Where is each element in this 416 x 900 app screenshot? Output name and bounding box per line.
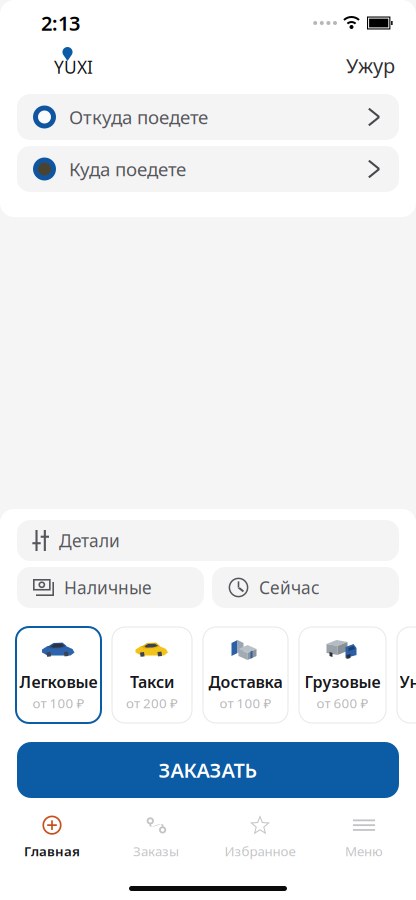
staticText: Меню	[345, 842, 383, 860]
button[interactable]: Куда поедете	[17, 146, 399, 192]
staticText: YUXI	[54, 55, 93, 78]
button[interactable]: Наличные	[17, 567, 204, 608]
staticText: Куда поедете	[69, 157, 186, 181]
staticText: Откуда поедете	[69, 105, 208, 129]
button[interactable]: Главная	[0, 815, 104, 859]
button[interactable]: Такси	[112, 627, 192, 723]
staticText: Детали	[59, 529, 120, 552]
staticText: от 200 ₽	[126, 694, 178, 712]
button[interactable]: Доставка	[203, 627, 288, 723]
staticText: Такси	[130, 671, 174, 692]
staticText: Наличные	[64, 576, 152, 599]
button[interactable]: Меню	[312, 815, 416, 859]
staticText: от 100 ₽	[219, 694, 271, 712]
staticText: Доставка	[208, 671, 282, 692]
button[interactable]: Универсал	[397, 627, 416, 723]
button[interactable]: Избранное	[208, 815, 312, 859]
staticText: Заказы	[133, 842, 179, 860]
staticText: Избранное	[224, 842, 295, 860]
staticText: от 100 ₽	[32, 694, 84, 712]
staticText: 2:13	[41, 10, 80, 36]
staticText: от 600 ₽	[316, 694, 368, 712]
staticText: Легковые	[19, 671, 97, 692]
staticText: Главная	[24, 842, 80, 860]
staticText: ЗАКАЗАТЬ	[158, 757, 257, 783]
button[interactable]: Грузовые	[299, 627, 386, 723]
staticText: Ужур	[346, 52, 395, 79]
staticText: Грузовые	[304, 671, 380, 692]
button[interactable]: Детали	[17, 520, 399, 561]
button[interactable]: Заказы	[104, 815, 208, 859]
staticText: Сейчас	[259, 576, 320, 599]
button[interactable]: ЗАКАЗАТЬ	[17, 742, 399, 798]
button[interactable]: Откуда поедете	[17, 94, 399, 140]
staticText: Универсал	[399, 671, 416, 692]
button[interactable]: Сейчас	[212, 567, 399, 608]
button[interactable]: Легковые	[16, 627, 101, 723]
